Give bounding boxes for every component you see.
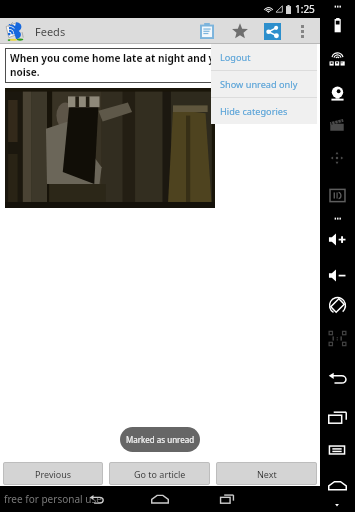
other: More options — [301, 25, 304, 38]
staticText: 1:25 — [295, 2, 315, 16]
button[interactable]: Volume up — [324, 227, 350, 251]
other: Share — [266, 25, 279, 38]
staticText: Show unread only — [220, 78, 298, 91]
staticText: Previous — [35, 468, 72, 480]
button[interactable]: More — [324, 206, 350, 230]
button[interactable]: Back — [80, 486, 112, 512]
other: Recents — [220, 492, 234, 506]
button[interactable]: More options — [289, 18, 315, 44]
staticText: Hide categories — [220, 105, 288, 118]
button[interactable]: Record video — [324, 113, 350, 137]
staticText: When you come home late at night and you… — [10, 51, 311, 79]
button[interactable]: Logout — [211, 44, 317, 70]
button[interactable]: Recents — [211, 486, 243, 512]
button[interactable]: Hide categories — [211, 98, 317, 124]
button[interactable]: Volume down — [324, 263, 350, 287]
staticText: Logout — [220, 51, 251, 64]
button[interactable]: Go to article — [109, 462, 210, 485]
button[interactable]: Recents — [324, 405, 350, 429]
staticText: Marked as unread — [126, 434, 195, 445]
staticText: Go to article — [134, 468, 186, 480]
staticText: free for personal use — [4, 492, 102, 506]
button[interactable]: Camera — [324, 82, 350, 106]
other: Mark all as read — [200, 23, 214, 39]
other: Back — [89, 492, 104, 507]
button[interactable]: Next — [216, 462, 317, 485]
button[interactable]: Previous — [3, 462, 103, 485]
button[interactable]: More controls — [324, 493, 350, 512]
staticText: Feeds — [35, 24, 66, 39]
button[interactable]: Back — [324, 366, 350, 390]
button[interactable]: D-pad — [324, 146, 350, 170]
button[interactable]: Zoom to 1:1 — [324, 326, 350, 350]
button[interactable]: Favourite — [223, 18, 256, 44]
button[interactable]: Menu — [324, 438, 350, 462]
button[interactable]: Home — [324, 473, 350, 497]
button[interactable]: Mark all as read — [190, 18, 223, 44]
staticText: Next — [257, 468, 277, 480]
button[interactable]: Share — [256, 18, 289, 44]
button[interactable]: Show unread only — [211, 71, 317, 97]
button[interactable]: Device ID — [324, 183, 350, 207]
other: Favourite — [232, 23, 248, 39]
button[interactable]: Panel options — [324, 0, 350, 18]
button[interactable]: GPS — [324, 47, 350, 71]
other: Home — [151, 490, 169, 508]
button[interactable]: Rotate — [324, 293, 350, 317]
button[interactable]: Battery — [324, 13, 350, 37]
button[interactable]: Home — [144, 486, 176, 512]
